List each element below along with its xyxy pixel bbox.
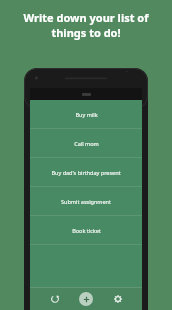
staticText: Call mom — [74, 140, 99, 147]
staticText: Submit assignment — [61, 198, 111, 205]
staticText: Book ticket — [72, 227, 101, 234]
button[interactable]: Settings — [109, 290, 127, 308]
button[interactable]: Restore — [46, 290, 64, 308]
button[interactable]: Submit assignment — [30, 187, 142, 215]
button[interactable]: Buy dad's birthday present — [30, 158, 142, 186]
button[interactable]: Call mom — [30, 129, 142, 157]
button[interactable]: Buy milk — [30, 100, 142, 128]
button[interactable]: Book ticket — [30, 216, 142, 244]
staticText: Buy dad's birthday present — [51, 169, 121, 176]
staticText: Write down your list of things to do! — [0, 10, 172, 40]
button[interactable]: Add task — [79, 292, 93, 306]
staticText: Buy milk — [75, 111, 98, 118]
